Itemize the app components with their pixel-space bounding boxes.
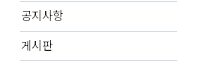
staticText: 공지사항 bbox=[21, 7, 64, 24]
button[interactable]: 게시판 bbox=[0, 32, 199, 60]
button[interactable]: 공지사항 bbox=[0, 2, 199, 31]
staticText: 게시판 bbox=[21, 37, 53, 54]
